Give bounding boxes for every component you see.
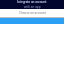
staticText: with an app — [24, 5, 41, 9]
staticText: Choose an account — [19, 11, 46, 15]
staticText: Integrate an account — [17, 0, 47, 4]
